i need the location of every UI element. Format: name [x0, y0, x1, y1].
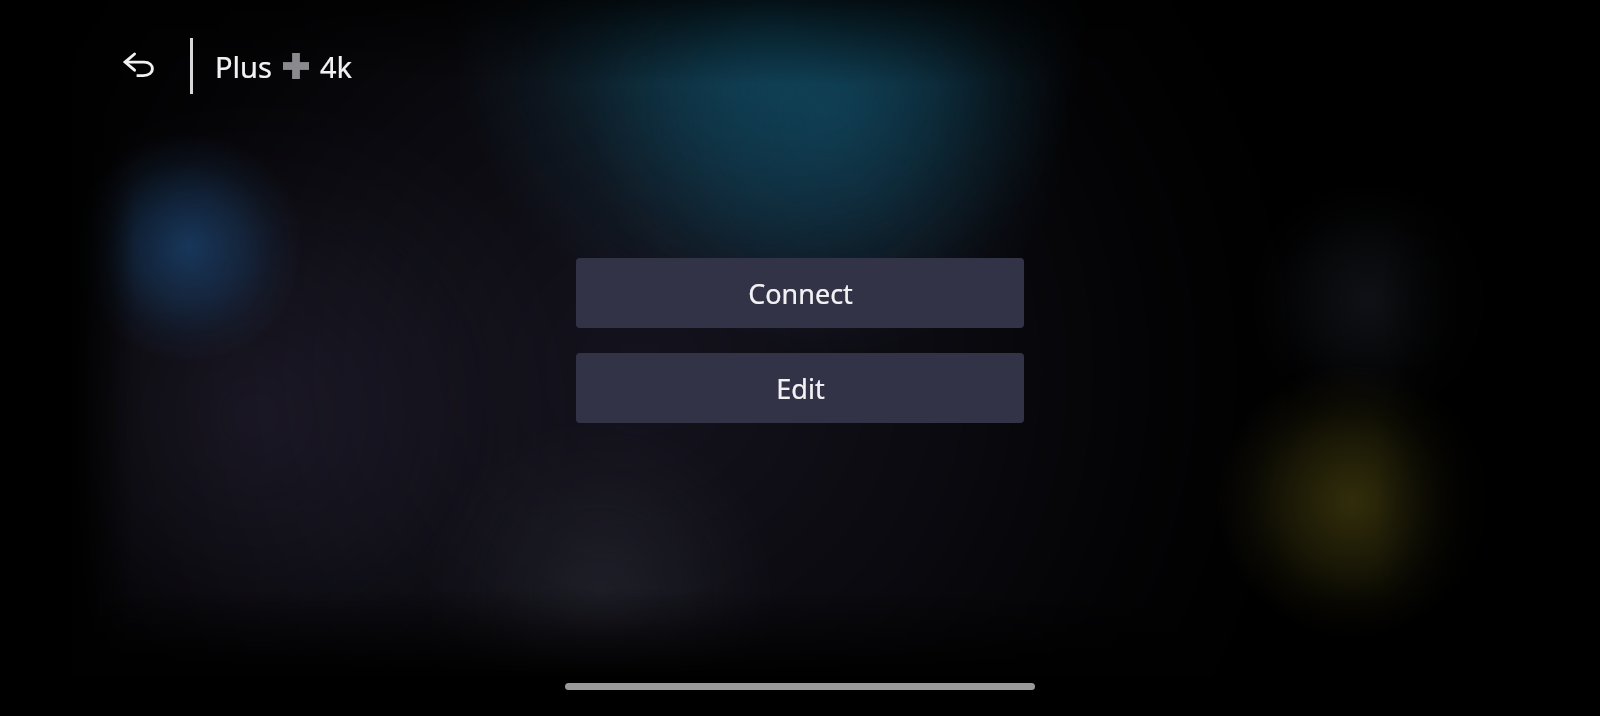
button[interactable]: Connect — [576, 258, 1024, 328]
staticText: Connect — [748, 275, 853, 312]
staticText: Plus — [215, 47, 272, 86]
button[interactable]: Back — [112, 38, 168, 94]
button[interactable]: Edit — [576, 353, 1024, 423]
staticText: 4k — [320, 47, 353, 86]
staticText: Edit — [776, 370, 825, 407]
